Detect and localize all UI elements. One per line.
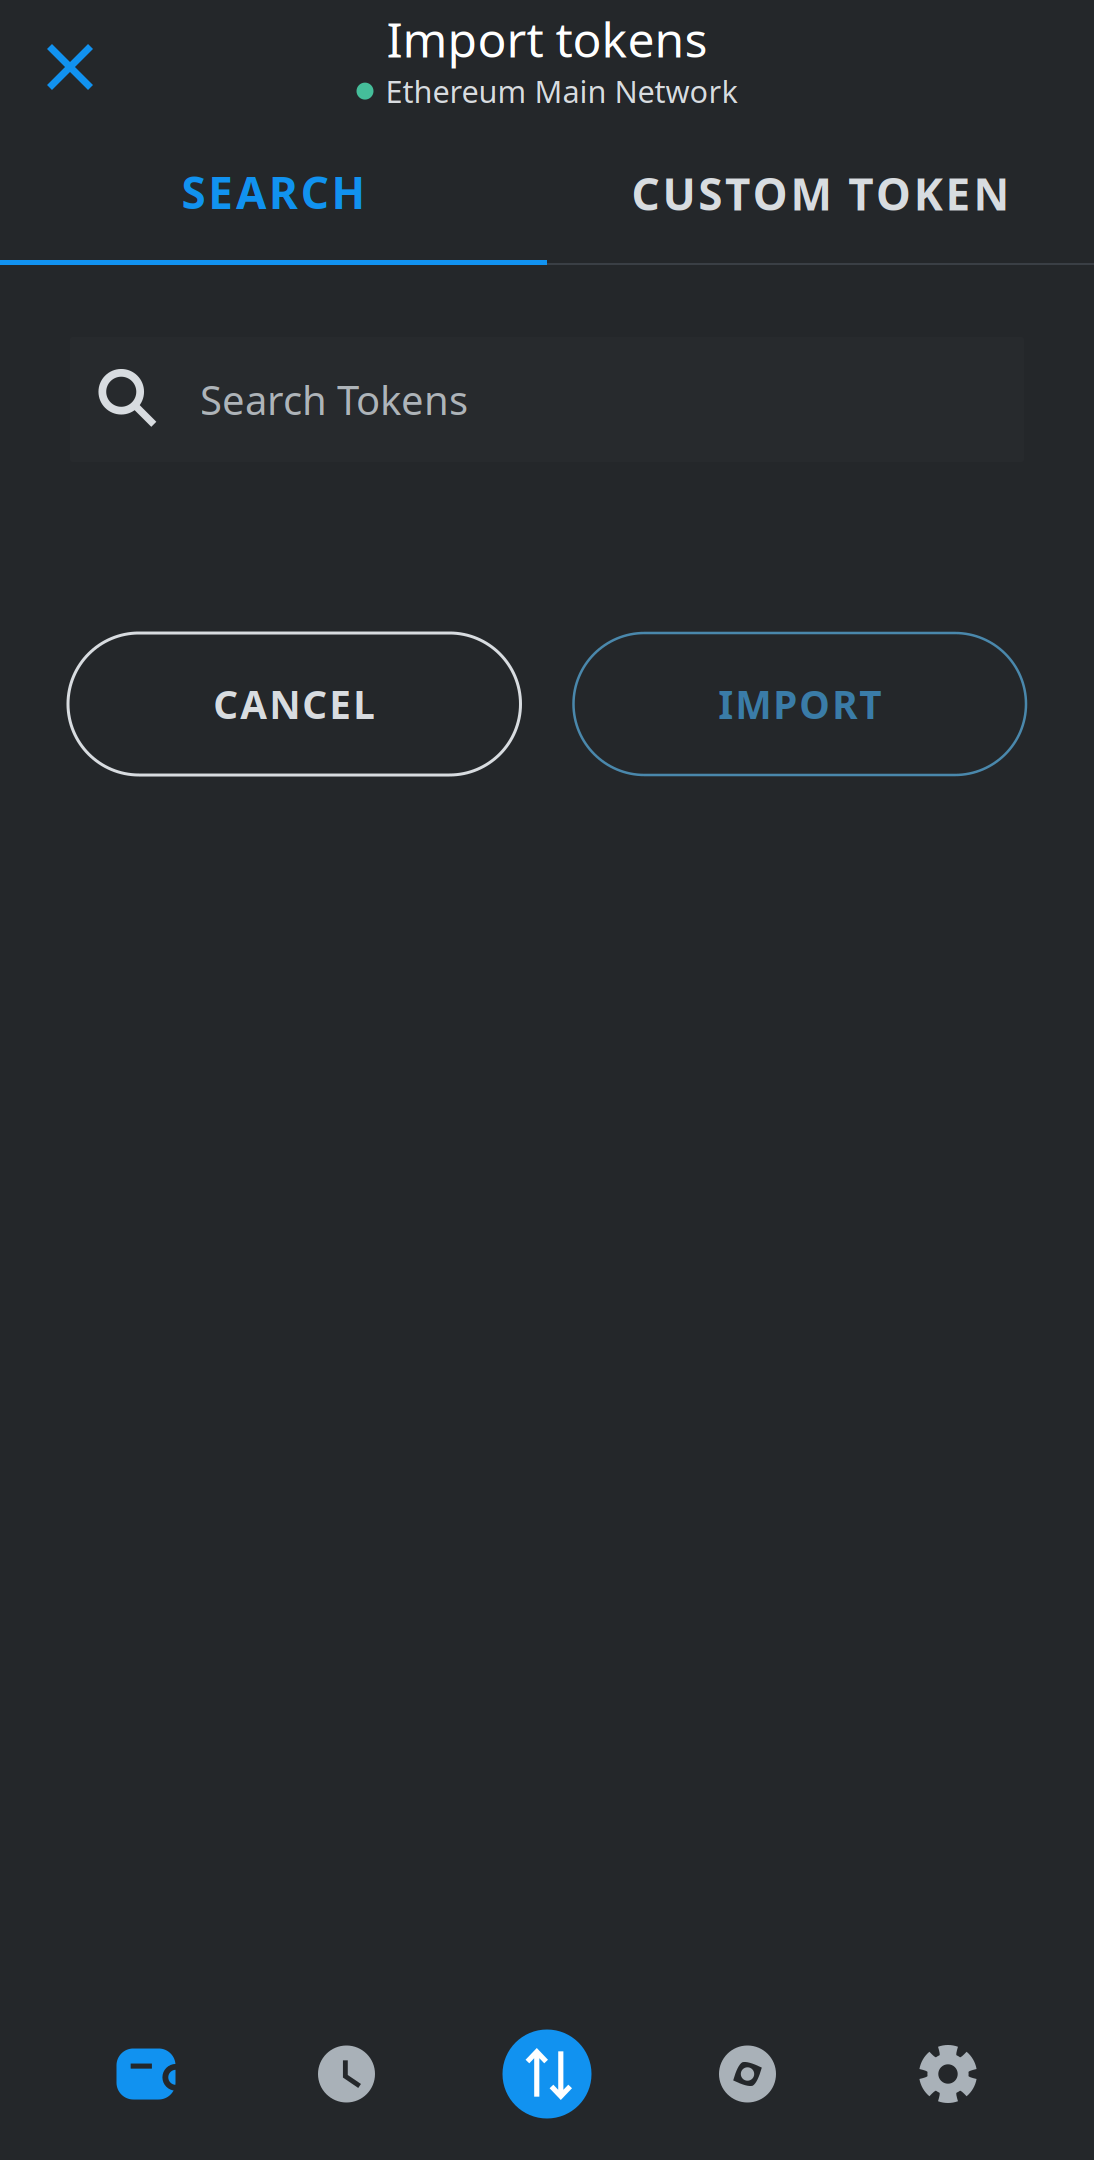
button[interactable]: Wallet <box>86 2018 206 2130</box>
button[interactable]: Close <box>0 0 140 124</box>
staticText: SEARCH <box>181 163 365 221</box>
staticText: CANCEL <box>213 678 375 730</box>
staticText: CUSTOM TOKEN <box>632 164 1009 223</box>
button[interactable]: SEARCH <box>0 124 547 265</box>
staticText: IMPORT <box>718 678 881 730</box>
button[interactable]: Activity <box>286 2018 406 2130</box>
button[interactable]: IMPORT <box>573 633 1026 775</box>
button[interactable]: Settings <box>888 2018 1008 2130</box>
button[interactable]: Swap <box>487 2018 607 2130</box>
staticText: Import tokens <box>386 7 707 71</box>
staticText: Ethereum Main Network <box>385 71 737 111</box>
button[interactable]: CUSTOM TOKEN <box>547 124 1094 265</box>
staticText: Search Tokens <box>200 373 468 426</box>
button[interactable]: CANCEL <box>68 633 520 775</box>
button[interactable]: Search Tokens <box>70 337 1024 462</box>
button[interactable]: Browser <box>687 2018 807 2130</box>
